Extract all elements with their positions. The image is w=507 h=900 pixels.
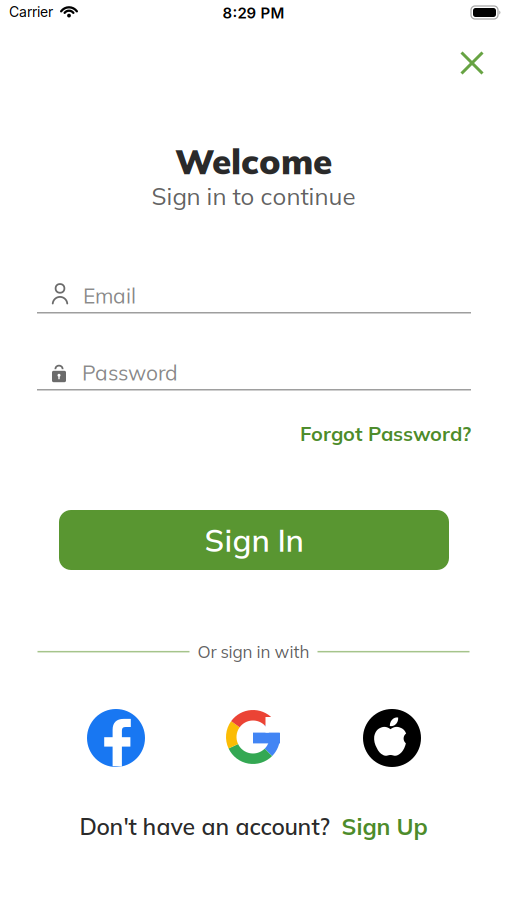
staticText: Password [82,359,178,386]
staticText: Welcome [175,139,332,183]
staticText: Sign In [204,520,303,559]
button[interactable]: Sign in with Facebook [87,709,145,767]
staticText: Forgot Password? [300,421,471,446]
staticText: Don't have an account? [79,812,329,841]
button[interactable]: Sign In [59,510,449,570]
button[interactable]: Sign in with Google [226,710,280,764]
staticText: Sign Up [341,812,427,841]
button[interactable]: Sign in with Apple [363,709,421,767]
button[interactable]: Forgot Password? [300,421,471,446]
button[interactable]: Sign Up [341,812,427,841]
staticText: 8:29 PM [222,4,284,22]
staticText: Email [83,282,136,309]
staticText: Sign in to continue [151,181,355,211]
staticText: Or sign in with [197,641,309,662]
button[interactable]: Close [452,43,492,83]
staticText: Carrier [9,3,53,20]
